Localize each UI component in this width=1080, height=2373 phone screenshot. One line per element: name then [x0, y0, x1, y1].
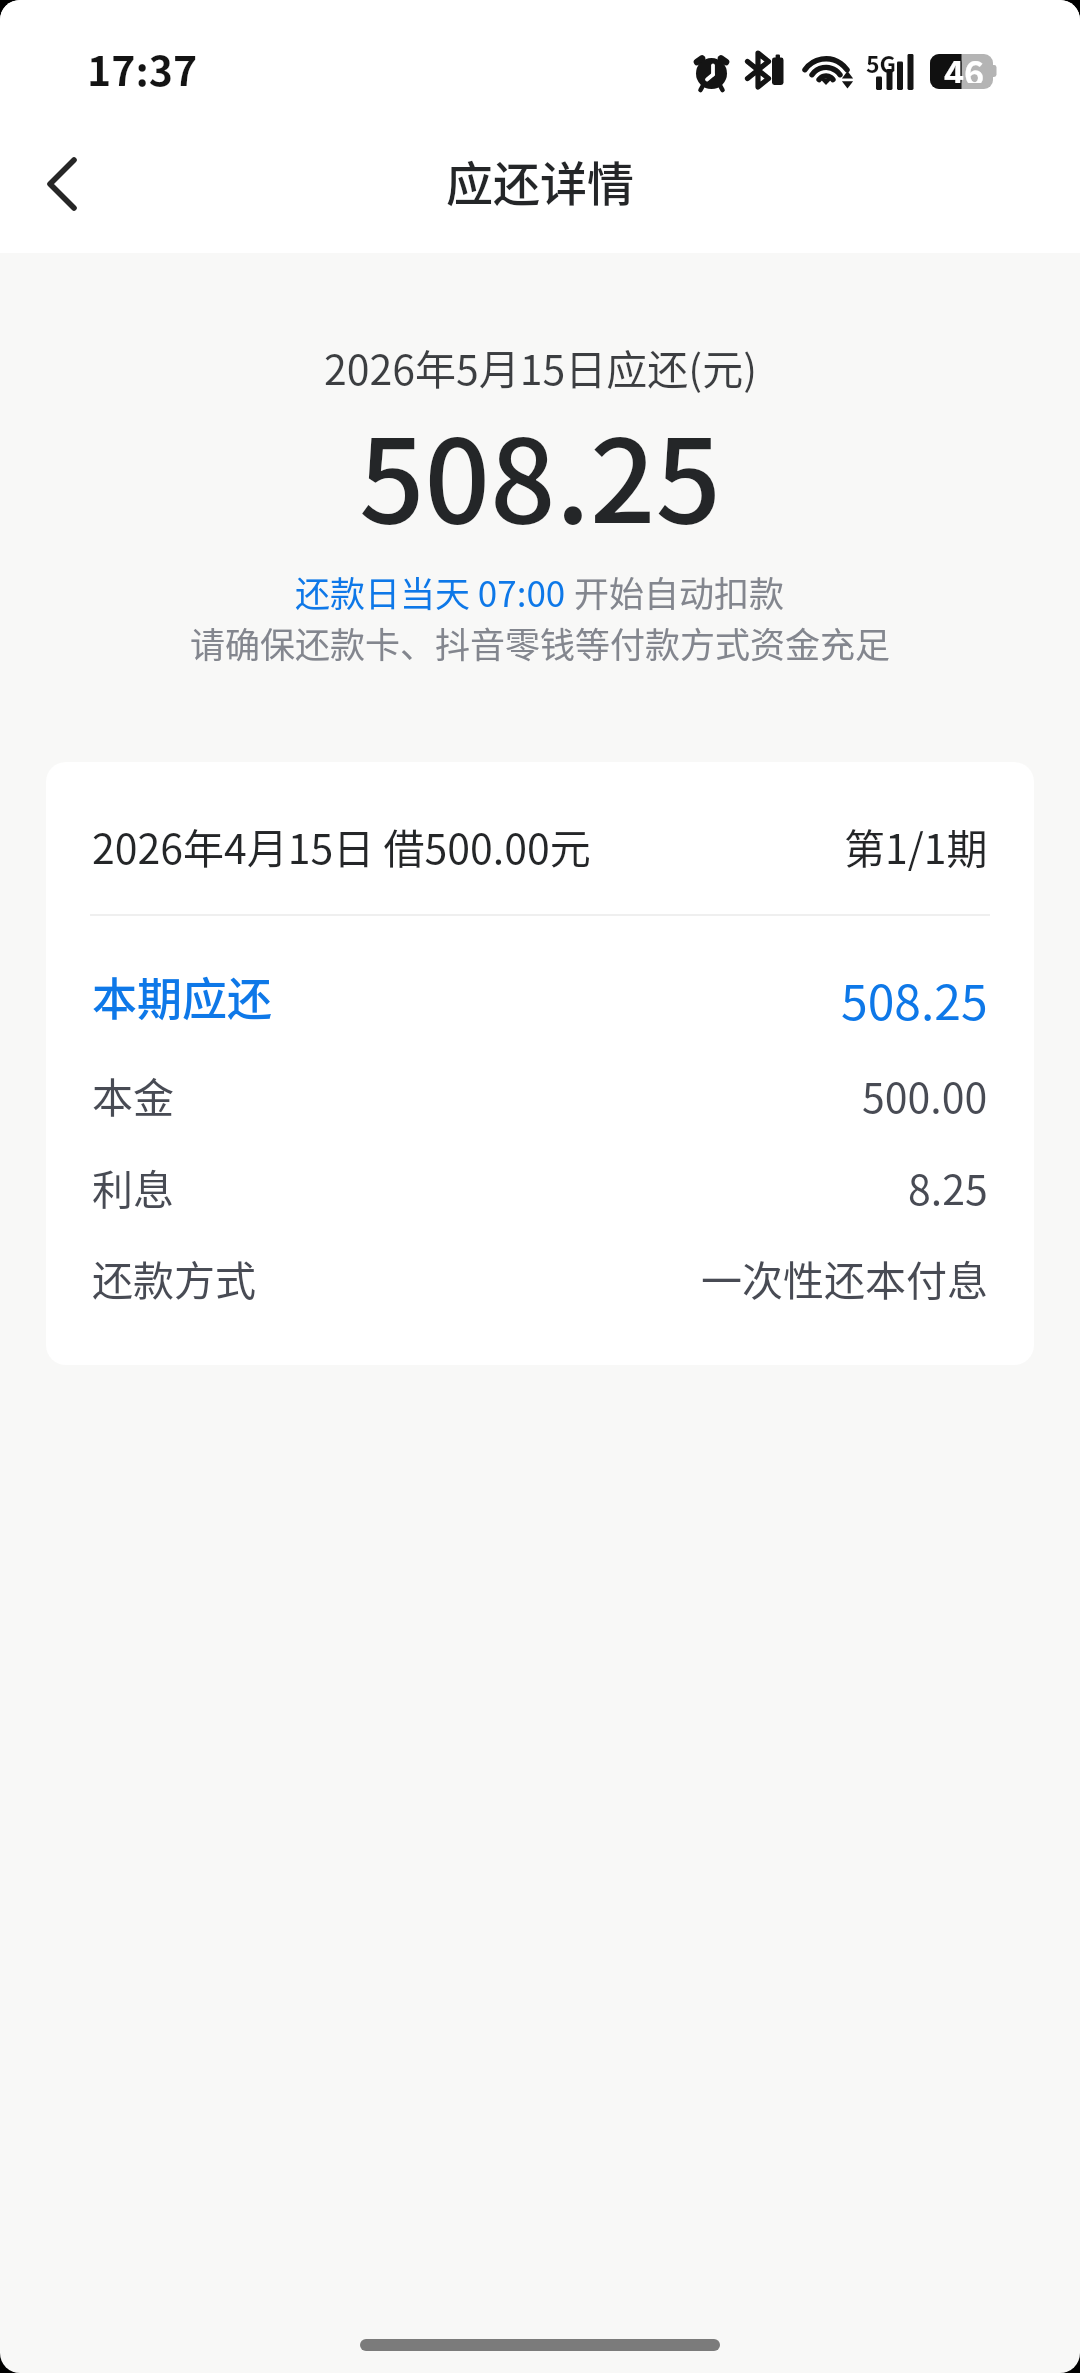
staticText: 请确保还款卡、抖音零钱等付款方式资金充足 [190, 617, 891, 668]
staticText: 508.25 [359, 390, 722, 557]
staticText: 还款方式 [92, 1248, 256, 1307]
button[interactable]: 利息 [46, 1131, 1034, 1223]
staticText: 2026年5月15日应还(元) [324, 337, 757, 396]
button[interactable]: 本期应还 [46, 938, 1034, 1030]
staticText: 开始自动扣款 [574, 566, 785, 617]
staticText: 第1/1期 [844, 816, 988, 875]
button[interactable]: 本金 [46, 1039, 1034, 1131]
staticText: 5G [866, 46, 897, 79]
button[interactable]: 2026年4月15日 借500.00元 [46, 790, 1034, 900]
staticText: 还款日当天 07:00 [295, 566, 574, 617]
staticText: 17:37 [87, 38, 198, 97]
staticText: 2026年4月15日 借500.00元 [92, 816, 591, 875]
staticText: 应还详情 [446, 146, 634, 214]
button[interactable]: Back [12, 134, 112, 234]
staticText: 一次性还本付息 [701, 1248, 988, 1307]
button[interactable]: 还款方式 [46, 1222, 1034, 1314]
staticText: 利息 [92, 1157, 174, 1216]
staticText: 500.00 [862, 1065, 988, 1124]
staticText: 46 [944, 47, 985, 83]
staticText: 508.25 [841, 964, 988, 1034]
staticText: 本金 [92, 1065, 174, 1124]
staticText: 本期应还 [92, 964, 273, 1029]
staticText: 8.25 [908, 1157, 988, 1216]
